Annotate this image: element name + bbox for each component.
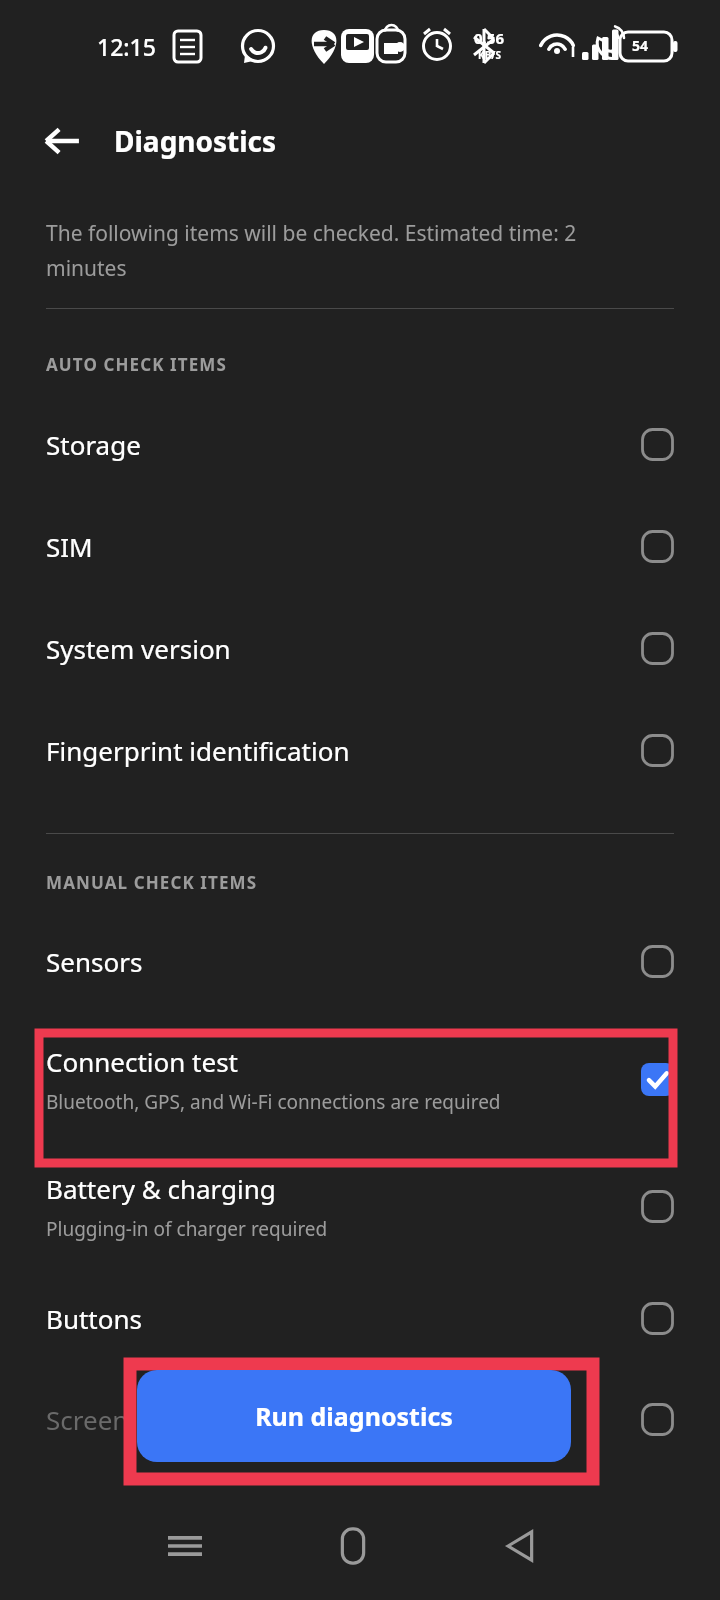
staticText: Screen [46, 1402, 129, 1437]
button[interactable]: Home [317, 1510, 389, 1582]
staticText: Buttons [46, 1301, 142, 1336]
button[interactable]: Back [485, 1510, 557, 1582]
staticText: Connection test [46, 1044, 238, 1079]
staticText: The following items will be checked. Est… [46, 219, 628, 282]
button[interactable]: Battery & charging [0, 1146, 720, 1266]
staticText: 0.56 [474, 28, 504, 48]
button[interactable]: Connection test [0, 1019, 720, 1139]
button[interactable]: Storage [0, 396, 720, 492]
staticText: 54 [632, 36, 649, 55]
staticText: 12:15 [97, 31, 156, 62]
button[interactable]: Run diagnostics [137, 1370, 571, 1462]
staticText: SIM [46, 529, 93, 564]
button[interactable]: SIM [0, 498, 720, 594]
button[interactable]: Unchecked [641, 734, 674, 767]
button[interactable]: Fingerprint identification [0, 702, 720, 798]
button[interactable]: Unchecked [641, 1302, 674, 1335]
staticText: Run diagnostics [255, 1399, 453, 1433]
button[interactable]: Unchecked [641, 530, 674, 563]
staticText: MANUAL CHECK ITEMS [46, 871, 258, 894]
button[interactable]: Unchecked [641, 428, 674, 461]
button[interactable]: Buttons [0, 1270, 720, 1366]
staticText: AUTO CHECK ITEMS [46, 353, 227, 376]
staticText: Battery & charging [46, 1171, 276, 1206]
button[interactable]: Connection test checked [641, 1063, 674, 1096]
button[interactable]: Screen [0, 1371, 720, 1467]
staticText: Sensors [46, 944, 143, 979]
button[interactable]: Unchecked [641, 632, 674, 665]
staticText: Diagnostics [114, 122, 277, 160]
staticText: Fingerprint identification [46, 733, 350, 768]
button[interactable]: Unchecked [641, 1190, 674, 1223]
button[interactable]: Sensors [0, 913, 720, 1009]
staticText: System version [46, 631, 231, 666]
staticText: KB/S [478, 48, 501, 62]
button[interactable]: System version [0, 600, 720, 696]
staticText: Plugging-in of charger required [46, 1216, 328, 1242]
button[interactable]: Unchecked [641, 1403, 674, 1436]
button[interactable]: Recent apps [149, 1510, 221, 1582]
button[interactable]: Unchecked [641, 945, 674, 978]
staticText: Storage [46, 427, 141, 462]
staticText: Bluetooth, GPS, and Wi-Fi connections ar… [46, 1089, 501, 1115]
button[interactable]: Back [30, 109, 94, 173]
